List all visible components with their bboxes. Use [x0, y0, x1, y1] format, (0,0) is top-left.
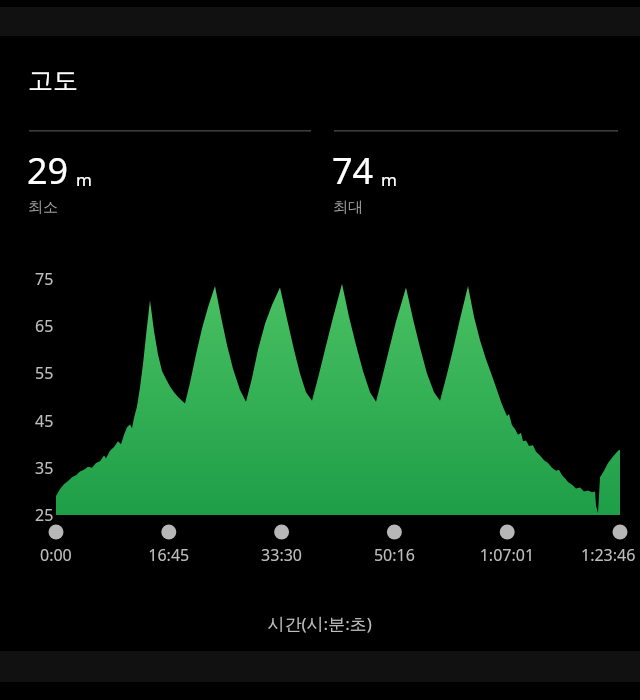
button[interactable]: 고도 그래프 — [20, 262, 620, 582]
button[interactable]: 최대 74 m — [333, 140, 618, 222]
button[interactable]: 최소 29 m — [28, 140, 311, 222]
button[interactable]: 고도 — [28, 58, 138, 100]
